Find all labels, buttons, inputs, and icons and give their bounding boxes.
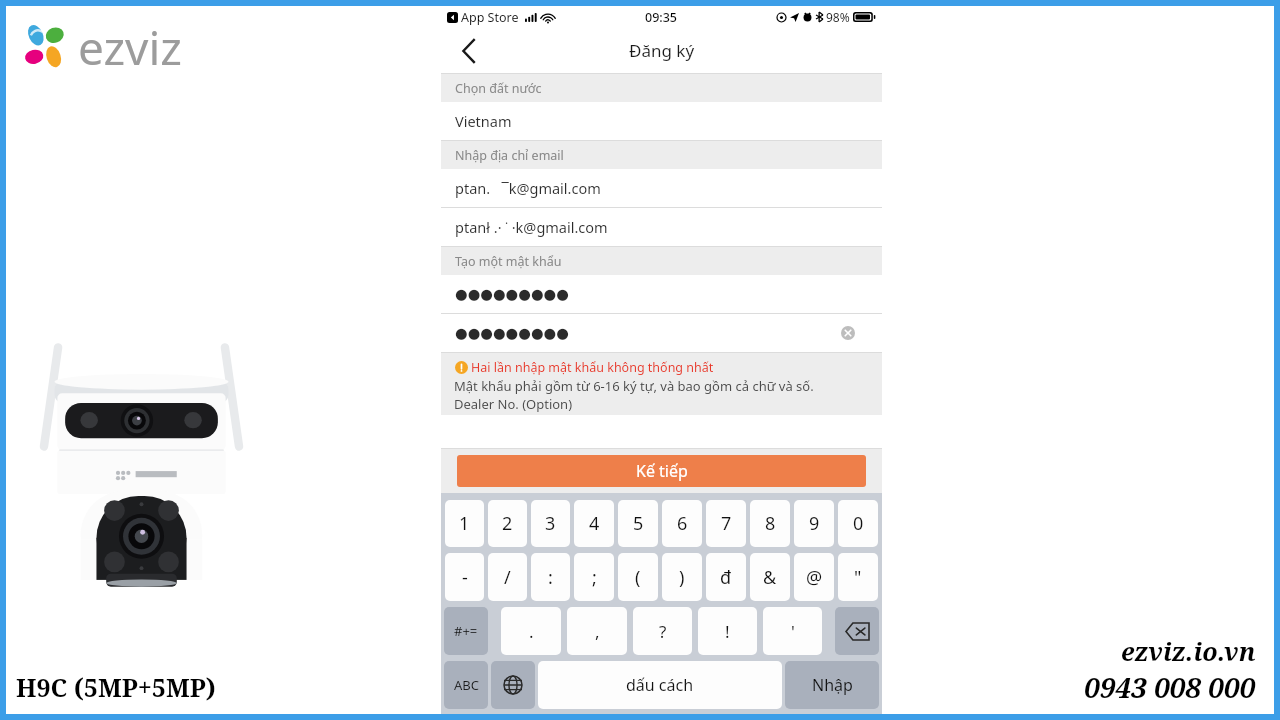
staticText: Dealer No. (Option) <box>454 395 573 413</box>
button[interactable]: 6 <box>662 500 702 547</box>
button[interactable]: ABC <box>444 661 488 709</box>
staticText: ●●●●●●●●● <box>455 286 569 303</box>
staticText: Nhập <box>812 674 853 696</box>
button[interactable]: 9 <box>794 500 834 547</box>
staticText: 2 <box>502 511 513 536</box>
staticText: 1 <box>459 511 470 536</box>
button[interactable]: ! <box>698 607 757 655</box>
staticText: : <box>548 565 553 590</box>
button[interactable]: #+= <box>444 607 488 655</box>
staticText: Hai lần nhập mật khẩu không thống nhất <box>471 359 714 376</box>
button[interactable]: 5 <box>618 500 658 547</box>
button[interactable]: . <box>501 607 561 655</box>
staticText: ? <box>659 620 667 643</box>
staticText: ' <box>791 620 795 643</box>
button[interactable]: 1 <box>445 500 484 547</box>
button[interactable]: Kế tiếp <box>457 455 866 487</box>
button[interactable]: 2 <box>488 500 527 547</box>
staticText: Tạo một mật khẩu <box>455 253 562 270</box>
staticText: ptanł .· ˙ ·k@gmail.com <box>455 217 608 237</box>
button[interactable]: 8 <box>750 500 790 547</box>
staticText: App Store <box>461 9 519 26</box>
button[interactable]: ( <box>618 553 658 601</box>
staticText: H9C (5MP+5MP) <box>16 670 216 704</box>
button[interactable]: @ <box>794 553 834 601</box>
staticText: Mật khẩu phải gồm từ 6-16 ký tự, và bao … <box>454 377 814 395</box>
button[interactable]: ) <box>662 553 702 601</box>
button[interactable]: dấu cách <box>538 661 782 709</box>
button[interactable]: đ <box>706 553 746 601</box>
button[interactable]: - <box>445 553 484 601</box>
button[interactable]: Backspace <box>835 607 879 655</box>
staticText: " <box>854 565 862 590</box>
button[interactable]: ptan. ‾k@gmail.com <box>441 169 882 208</box>
button[interactable]: ; <box>574 553 614 601</box>
staticText: Nhập địa chỉ email <box>455 147 564 164</box>
staticText: 5 <box>633 511 644 536</box>
button[interactable]: , <box>567 607 627 655</box>
staticText: 6 <box>677 511 688 536</box>
button[interactable]: 3 <box>531 500 570 547</box>
button[interactable]: " <box>838 553 878 601</box>
staticText: ezviz <box>78 16 182 76</box>
staticText: 0943 008 000 <box>1084 668 1256 706</box>
staticText: . <box>529 620 534 643</box>
button[interactable]: Change language <box>491 661 535 709</box>
staticText: Kế tiếp <box>636 460 688 482</box>
button[interactable]: ptanł .· ˙ ·k@gmail.com <box>441 208 882 247</box>
staticText: @ <box>806 565 823 590</box>
button[interactable]: 0 <box>838 500 878 547</box>
button[interactable]: 4 <box>574 500 614 547</box>
button[interactable]: Back <box>441 28 497 73</box>
staticText: ABC <box>454 676 479 694</box>
staticText: 0 <box>853 511 864 536</box>
button[interactable]: & <box>750 553 790 601</box>
staticText: đ <box>720 565 732 590</box>
staticText: ezviz.io.vn <box>1121 634 1256 668</box>
staticText: 8 <box>765 511 776 536</box>
staticText: / <box>504 565 511 590</box>
staticText: 4 <box>589 511 600 536</box>
staticText: , <box>595 620 600 643</box>
staticText: - <box>462 565 468 590</box>
button[interactable]: : <box>531 553 570 601</box>
staticText: dấu cách <box>626 674 694 696</box>
staticText: 3 <box>545 511 556 536</box>
staticText: 09:35 <box>645 9 678 26</box>
button[interactable]: ' <box>763 607 822 655</box>
button[interactable]: ●●●●●●●●● <box>441 275 882 314</box>
button[interactable]: Clear <box>838 323 858 343</box>
staticText: 98% <box>826 9 850 25</box>
button[interactable]: / <box>488 553 527 601</box>
staticText: ptan. ‾k@gmail.com <box>455 178 601 198</box>
staticText: ; <box>592 565 597 590</box>
staticText: & <box>763 565 777 590</box>
staticText: 9 <box>809 511 820 536</box>
button[interactable]: ? <box>633 607 692 655</box>
staticText: ●●●●●●●●● <box>455 325 569 342</box>
button[interactable]: Vietnam <box>441 102 882 141</box>
button[interactable]: 7 <box>706 500 746 547</box>
staticText: ( <box>635 565 641 590</box>
staticText: Chọn đất nước <box>455 80 542 97</box>
button[interactable]: Nhập <box>785 661 879 709</box>
button[interactable]: ●●●●●●●●● <box>441 314 882 353</box>
staticText: Đăng ký <box>629 39 695 62</box>
staticText: Vietnam <box>455 111 512 131</box>
staticText: #+= <box>454 622 478 640</box>
staticText: ! <box>725 620 730 643</box>
staticText: 7 <box>721 511 732 536</box>
staticText: ) <box>679 565 685 590</box>
